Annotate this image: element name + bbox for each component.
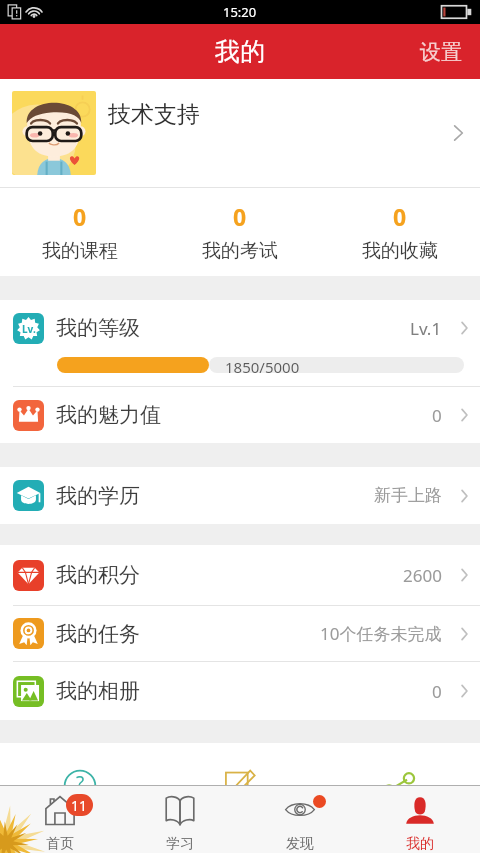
staticText: 15:20 [223, 3, 257, 21]
button[interactable]: 帮助 [0, 770, 160, 785]
staticText: 我的任务 [56, 621, 140, 647]
staticText: 我的相册 [56, 678, 140, 704]
staticText: 0 [393, 201, 407, 232]
staticText: 我的积分 [56, 562, 140, 588]
button[interactable]: 0 [160, 188, 320, 276]
button[interactable]: 我的积分 [0, 545, 480, 605]
button[interactable]: 0 [320, 188, 480, 276]
staticText: 新手上路 [374, 485, 442, 506]
button[interactable]: 学习 [120, 786, 240, 853]
button[interactable]: 我的任务 [0, 606, 480, 661]
staticText: 我的考试 [202, 239, 278, 263]
button[interactable]: 我的学历 [0, 467, 480, 524]
button[interactable]: 我的相册 [0, 662, 480, 720]
staticText: 设置 [420, 39, 462, 65]
staticText: 我的学历 [56, 483, 140, 509]
staticText: 10个任务未完成 [320, 622, 442, 645]
staticText: Lv.1 [410, 317, 442, 340]
button[interactable]: 11 [0, 786, 120, 853]
staticText: Lv. [22, 322, 36, 336]
staticText: 0 [432, 404, 442, 427]
button[interactable]: 分享 [320, 770, 480, 785]
staticText: 首页 [46, 835, 74, 853]
staticText: 我的收藏 [362, 239, 438, 263]
button[interactable]: 反馈 [160, 770, 320, 785]
button[interactable]: 发现 [240, 786, 360, 853]
staticText: 0 [432, 680, 442, 703]
button[interactable]: 0 [0, 188, 160, 276]
button[interactable]: 我的 [360, 786, 480, 853]
staticText: 1850/5000 [225, 357, 300, 373]
staticText: 技术支持 [108, 100, 200, 129]
staticText: 我的魅力值 [56, 402, 161, 428]
button[interactable]: Lv. [0, 300, 480, 356]
button[interactable]: 设置 [402, 24, 480, 79]
staticText: 0 [73, 201, 87, 232]
staticText: 发现 [286, 835, 314, 853]
staticText: ? [76, 770, 85, 785]
staticText: 11 [71, 796, 88, 815]
staticText: 我的 [215, 36, 265, 67]
staticText: 我的等级 [56, 315, 140, 341]
staticText: 0 [233, 201, 247, 232]
button[interactable]: 技术支持 [0, 79, 480, 187]
staticText: 我的课程 [42, 239, 118, 263]
staticText: 2600 [403, 564, 442, 587]
button[interactable]: 我的魅力值 [0, 387, 480, 443]
staticText: 我的 [406, 835, 434, 853]
staticText: 学习 [166, 835, 194, 853]
